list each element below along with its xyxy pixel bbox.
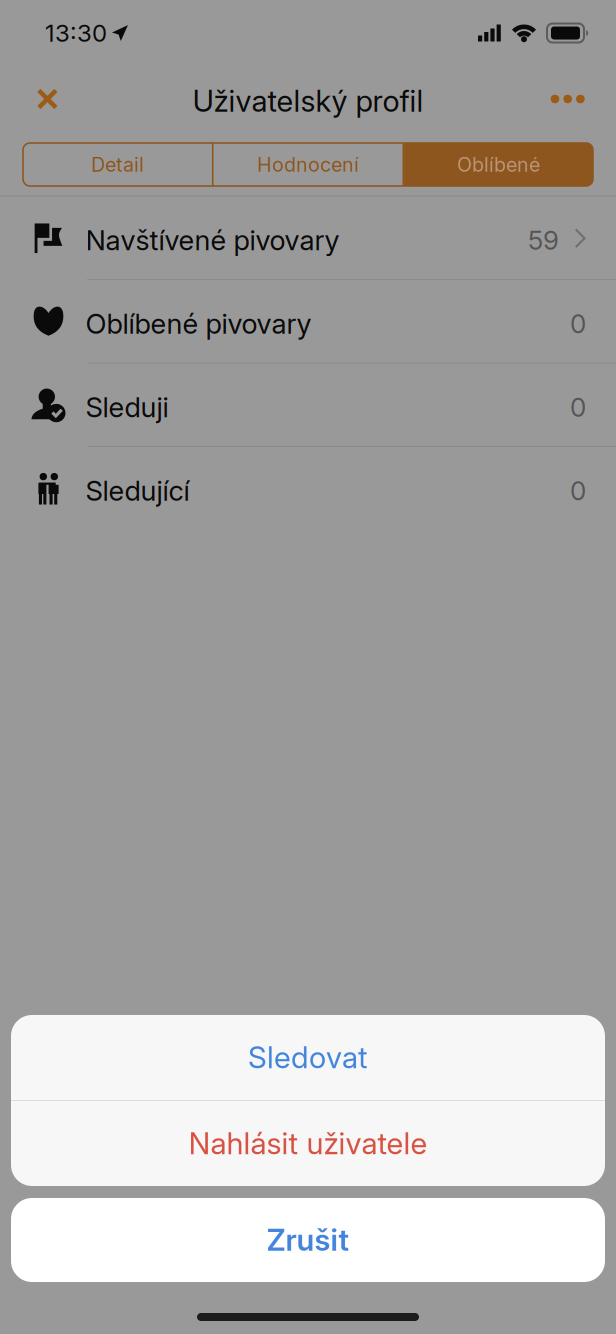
staticText: Sledující — [85, 474, 189, 507]
staticText: Nahlásit uživatele — [188, 1125, 427, 1161]
button[interactable]: Sledovat — [11, 1015, 605, 1100]
staticText: Sleduji — [85, 391, 168, 424]
button[interactable]: Sledující — [0, 447, 616, 530]
staticText: 0 — [570, 475, 586, 506]
button[interactable]: Nahlásit uživatele — [11, 1101, 605, 1186]
staticText: Navštívené pivovary — [85, 224, 339, 257]
staticText: Sledovat — [248, 1039, 368, 1075]
staticText: 0 — [570, 308, 586, 339]
button[interactable]: Sleduji — [0, 363, 616, 447]
staticText: Zrušit — [266, 1222, 349, 1258]
button[interactable]: Oblíbené pivovary — [0, 280, 616, 363]
button[interactable]: Zavřít — [0, 66, 95, 132]
staticText: 0 — [570, 391, 586, 423]
button[interactable]: Detail — [23, 143, 212, 186]
staticText: Uživatelský profil — [192, 83, 423, 119]
staticText: Hodnocení — [257, 153, 359, 176]
button[interactable]: Navštívené pivovary — [0, 196, 616, 280]
staticText: 13:30 — [45, 18, 107, 47]
button[interactable]: Oblíbené — [404, 143, 593, 186]
staticText: Oblíbené — [457, 153, 540, 176]
staticText: Detail — [91, 153, 144, 176]
button[interactable]: Zrušit — [11, 1198, 605, 1282]
button[interactable]: Další možnosti — [519, 66, 616, 132]
staticText: 59 — [528, 224, 559, 256]
button[interactable]: Hodnocení — [213, 143, 402, 186]
staticText: Oblíbené pivovary — [85, 307, 311, 340]
